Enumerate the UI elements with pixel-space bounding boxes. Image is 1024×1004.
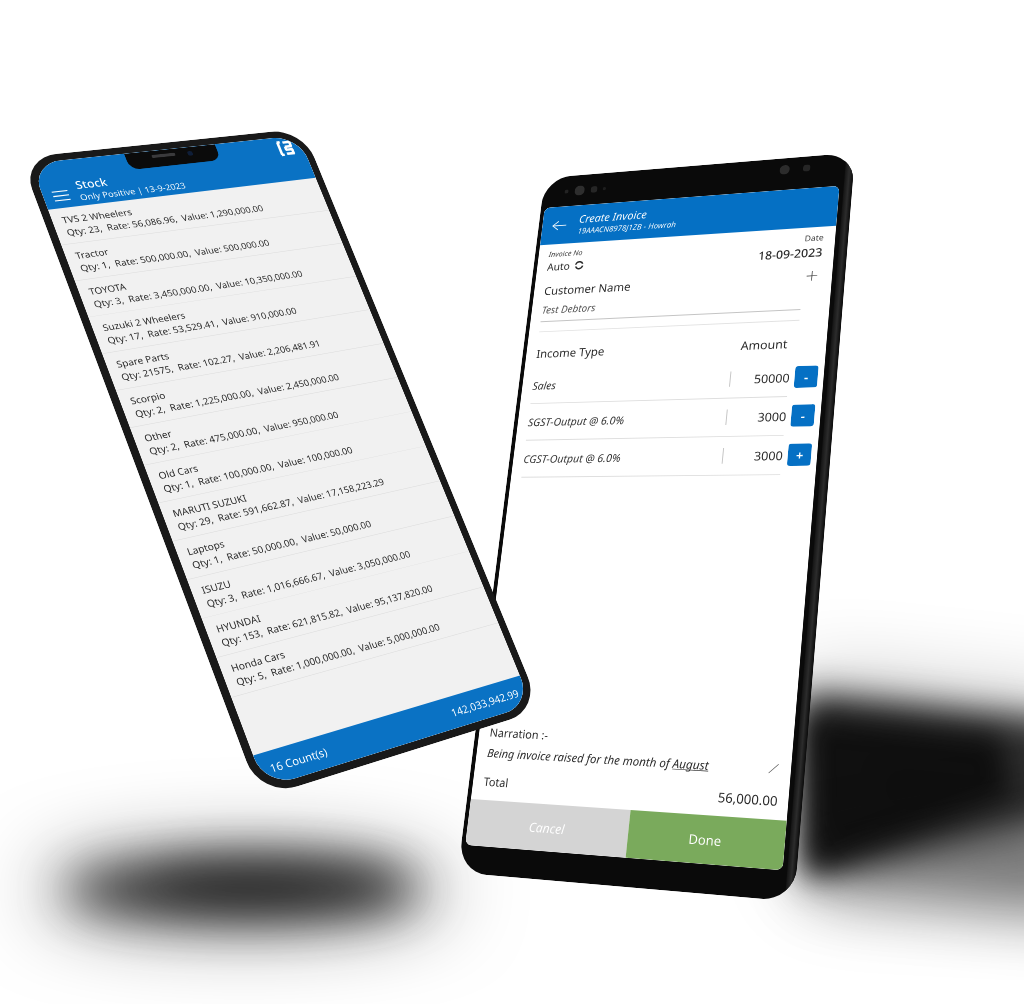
staticText: 18-09-2023	[509, 204, 645, 239]
staticText: CGST-Output @ 6.0%	[33, 650, 473, 683]
button[interactable]: TVS 2 Wheelers	[16, 125, 604, 207]
button[interactable]: Tractor	[16, 208, 604, 290]
button[interactable]: Suzuki 2 Wheelers	[16, 374, 604, 456]
staticText: Customer Name	[33, 258, 605, 293]
staticText: Sales	[33, 482, 473, 515]
button[interactable]: TOYOTA	[16, 291, 604, 373]
button[interactable]: Laptops	[16, 872, 604, 954]
staticText: Laptops	[36, 886, 112, 913]
button[interactable]: ISUZU	[16, 955, 604, 1004]
staticText: Qty: 2, Rate: 1,225,000.00, Value: 2,450…	[36, 583, 476, 610]
staticText: Qty: 1, Rate: 500,000.00, Value: 500,000…	[36, 251, 442, 278]
staticText: Test Debtors	[33, 305, 158, 336]
staticText: Spare Parts	[36, 471, 144, 498]
staticText: Qty: 29, Rate: 591,662.87, Value: 17,158…	[36, 832, 482, 859]
button[interactable]: Spare Parts	[16, 457, 604, 539]
staticText: Amount	[490, 406, 589, 441]
staticText: Qty: 2, Rate: 475,000.00, Value: 950,000…	[36, 666, 442, 693]
staticText: Date	[605, 177, 645, 202]
staticText: Invoice No	[33, 177, 113, 200]
button[interactable]: Other	[16, 623, 604, 705]
staticText: Qty: 23, Rate: 56,086.96, Value: 1,290,0…	[36, 168, 459, 195]
staticText: Qty: 17, Rate: 53,529.41, Value: 910,000…	[36, 417, 442, 444]
button[interactable]: Add customer	[605, 253, 649, 297]
staticText: Qty: 1, Rate: 100,000.00, Value: 100,000…	[36, 749, 442, 776]
button[interactable]: MARUTI SUZUKI	[16, 789, 604, 871]
staticText: 19AAACN8978J1ZB - Howrah	[95, 124, 321, 149]
button[interactable]: Scorpio	[16, 540, 604, 622]
button[interactable]: Old Cars	[16, 706, 604, 788]
staticText: TOYOTA	[36, 305, 111, 332]
staticText: MARUTI SUZUKI	[36, 803, 188, 830]
staticText: TVS 2 Wheelers	[36, 139, 180, 166]
staticText: Suzuki 2 Wheelers	[36, 388, 207, 415]
staticText: Qty: 1, Rate: 50,000.00, Value: 50,000.0…	[36, 915, 420, 942]
staticText: SGST-Output @ 6.0%	[33, 566, 473, 599]
button[interactable]: -	[609, 474, 657, 522]
staticText: Qty: 3, Rate: 3,450,000.00, Value: 10,35…	[36, 334, 487, 361]
staticText: Tractor	[36, 222, 103, 249]
staticText: Auto	[33, 202, 87, 235]
staticText: Income Type	[33, 406, 490, 441]
staticText: Qty: 21575, Rate: 102.27, Value: 2,206,4…	[36, 500, 465, 527]
